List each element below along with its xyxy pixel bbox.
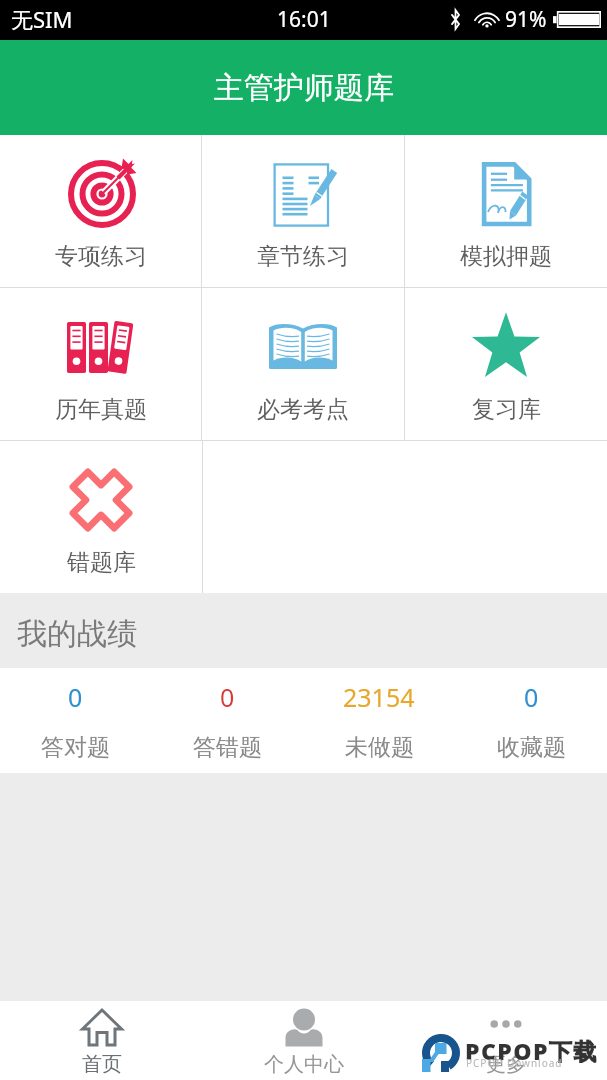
button[interactable]: 23154 [303,668,455,773]
staticText: 0 [524,680,539,714]
staticText: PCPOP下载 [465,1035,598,1066]
button[interactable]: 复习库 [405,288,607,440]
staticText: 首页 [82,1052,122,1077]
staticText: 复习库 [472,395,541,424]
staticText: 收藏题 [497,733,566,762]
staticText: 专项练习 [55,242,147,271]
button[interactable]: 专项练习 [0,135,201,287]
staticText: 错题库 [67,548,136,577]
button[interactable]: 历年真题 [0,288,201,440]
button[interactable]: 个人中心 [203,1001,405,1080]
staticText: 章节练习 [257,242,349,271]
staticText: 历年真题 [55,395,147,424]
staticText: 我的战绩 [17,615,137,653]
staticText: 0 [68,680,83,714]
staticText: PCPOP Download [466,1056,563,1070]
staticText: 91% [505,5,547,34]
button[interactable]: 模拟押题 [405,135,607,287]
staticText: 主管护师题库 [214,69,394,107]
staticText: 更多 [486,1052,526,1077]
button[interactable]: 章节练习 [202,135,404,287]
staticText: 未做题 [345,733,414,762]
button[interactable]: 首页 [0,1001,203,1080]
button[interactable]: 0 [151,668,303,773]
staticText: 必考考点 [257,395,349,424]
staticText: 答对题 [41,733,110,762]
button[interactable]: 更多 [405,1001,607,1080]
staticText: 0 [220,680,235,714]
button[interactable]: 0 [455,668,607,773]
staticText: 16:01 [277,5,331,34]
staticText: 无SIM [11,4,73,34]
button[interactable]: 0 [0,668,151,773]
staticText: 答错题 [193,733,262,762]
staticText: 个人中心 [264,1052,344,1077]
staticText: 23154 [343,680,415,714]
button[interactable]: 必考考点 [202,288,404,440]
staticText: 模拟押题 [460,242,552,271]
button[interactable]: 错题库 [0,441,202,593]
